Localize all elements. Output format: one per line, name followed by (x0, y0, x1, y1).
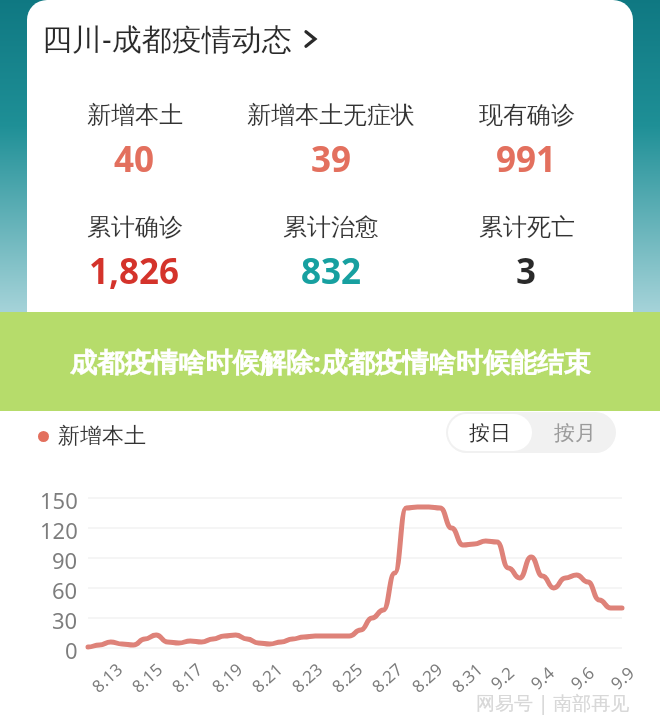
staticText: 新增本土无症状 (247, 100, 415, 130)
staticText: 120 (40, 515, 78, 545)
button[interactable]: 新增本土无症状 (232, 100, 430, 183)
staticText: 8.29 (407, 658, 447, 697)
staticText: 40 (114, 135, 155, 183)
button[interactable]: 四川-成都疫情动态 (42, 18, 320, 59)
button[interactable]: 累计确诊 (43, 212, 226, 295)
staticText: 8.17 (167, 658, 207, 697)
staticText: 累计治愈 (283, 212, 379, 242)
staticText: 39 (311, 135, 352, 183)
staticText: 60 (52, 575, 78, 605)
staticText: 150 (40, 485, 78, 515)
staticText: 8.31 (447, 658, 487, 697)
staticText: 9.9 (605, 661, 639, 694)
staticText: 8.21 (247, 658, 287, 697)
staticText: 8.15 (127, 658, 167, 697)
staticText: 8.23 (287, 658, 327, 697)
button[interactable]: 按日 (448, 414, 532, 451)
staticText: 30 (52, 605, 78, 635)
other: More details (302, 26, 320, 52)
staticText: 8.13 (87, 658, 127, 697)
staticText: 按月 (554, 420, 596, 446)
staticText: 9.4 (525, 661, 559, 694)
staticText: 四川-成都疫情动态 (42, 18, 292, 59)
staticText: 3 (516, 247, 537, 295)
staticText: 9.2 (485, 661, 519, 694)
staticText: 90 (52, 545, 78, 575)
staticText: 832 (301, 247, 362, 295)
staticText: 现有确诊 (479, 100, 575, 130)
button[interactable]: 现有确诊 (435, 100, 618, 183)
staticText: 成都疫情啥时候解除:成都疫情啥时候能结束 (70, 343, 591, 380)
staticText: 9.6 (565, 661, 599, 694)
staticText: 991 (496, 135, 557, 183)
button[interactable]: 按月 (534, 414, 616, 451)
staticText: 8.25 (327, 658, 367, 697)
staticText: 新增本土 (58, 422, 146, 450)
staticText: 8.19 (207, 658, 247, 697)
staticText: 新增本土 (87, 100, 183, 130)
button[interactable]: 累计死亡 (435, 212, 618, 295)
staticText: 1,826 (89, 247, 180, 295)
staticText: 8.27 (367, 658, 407, 697)
staticText: 网易号 | 南部再见 (476, 690, 630, 716)
button[interactable]: 新增本土 (43, 100, 226, 183)
button[interactable]: 累计治愈 (232, 212, 430, 295)
staticText: 累计死亡 (479, 212, 575, 242)
staticText: 按日 (469, 420, 511, 446)
staticText: 累计确诊 (87, 212, 183, 242)
staticText: 0 (65, 635, 78, 665)
